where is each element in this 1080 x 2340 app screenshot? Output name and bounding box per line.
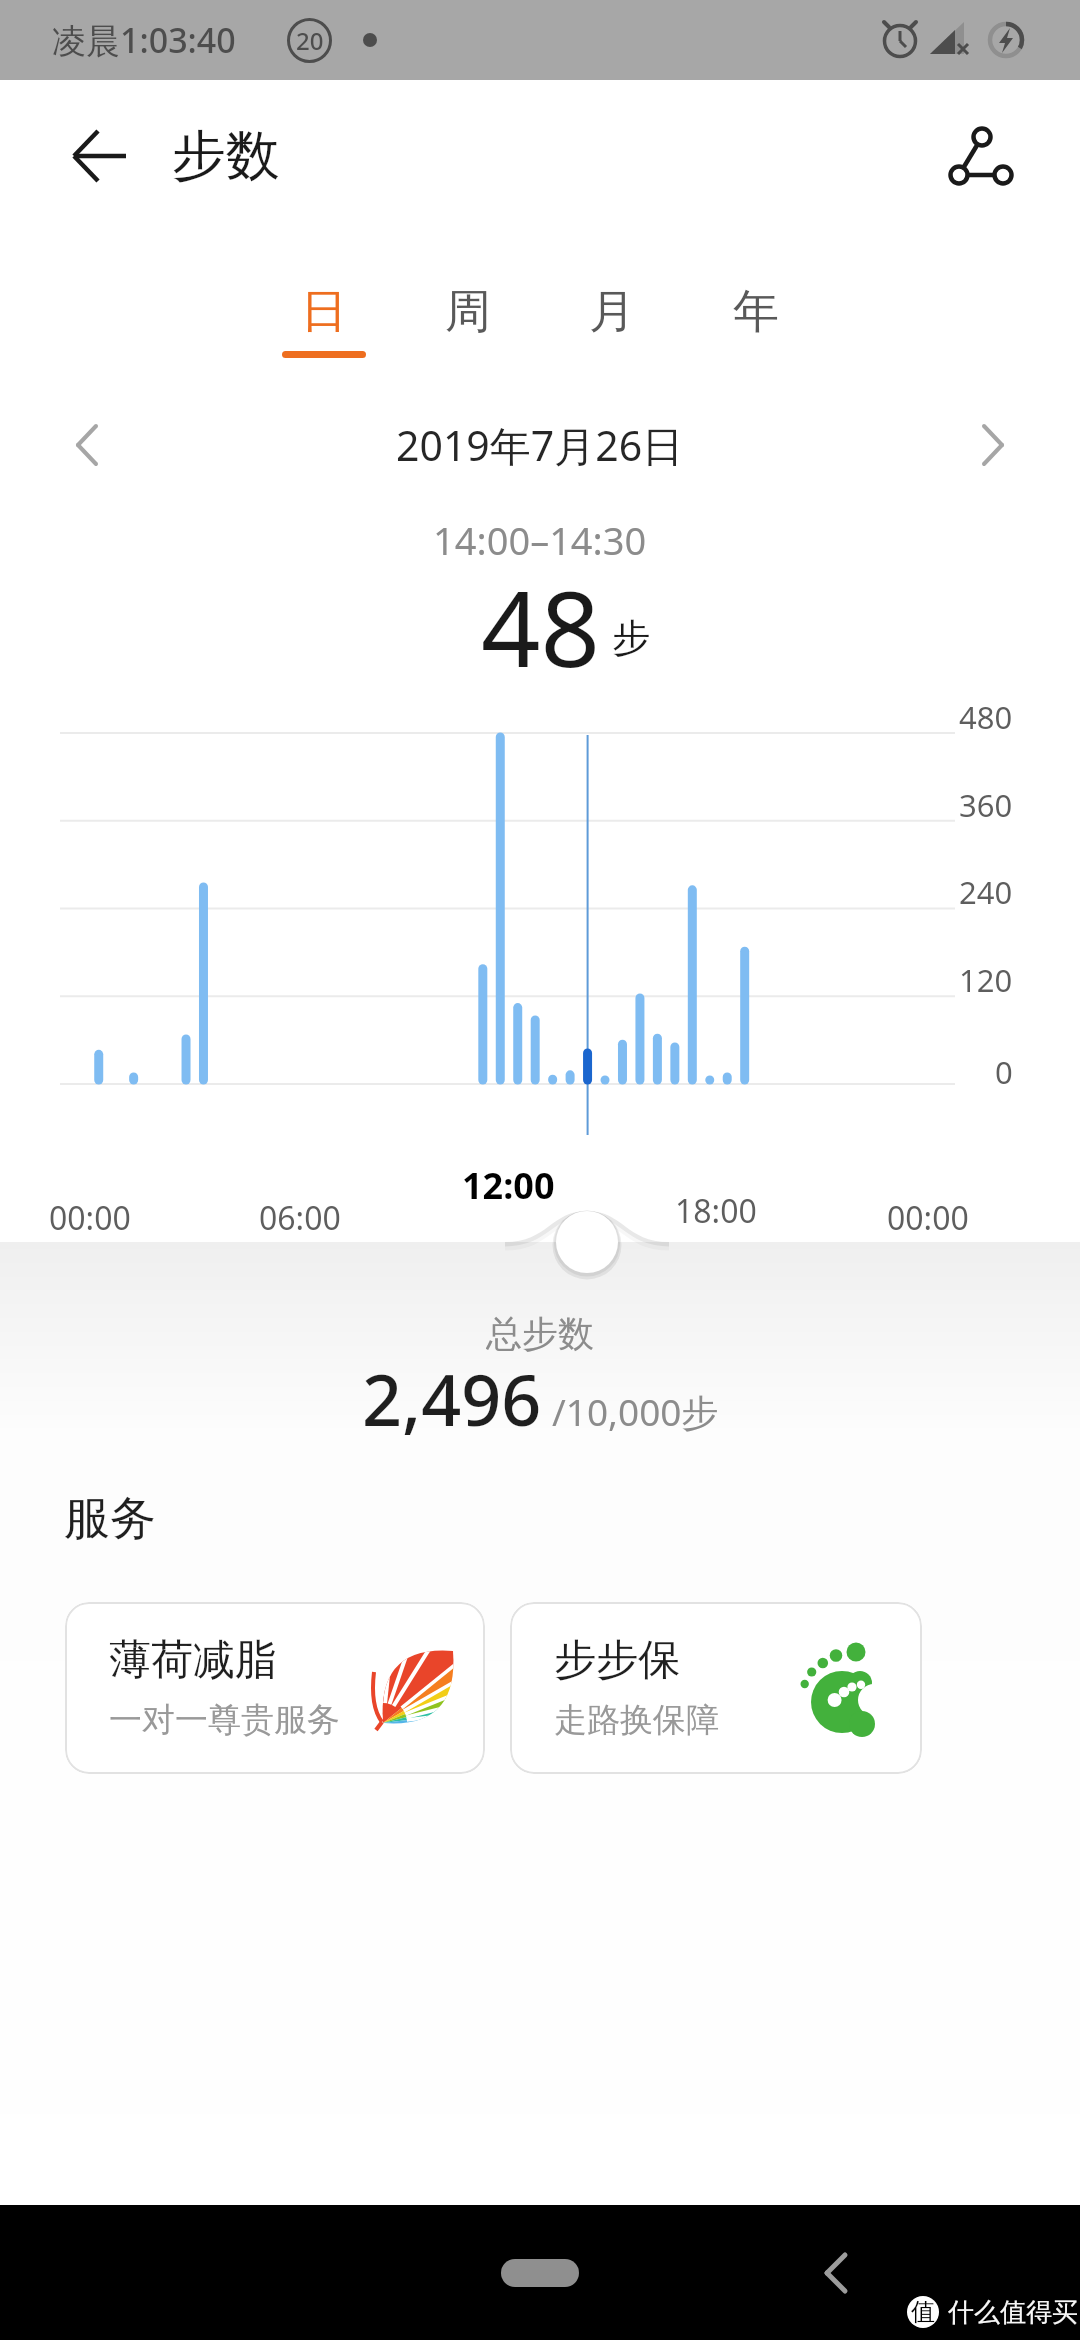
staticText: 年 [733, 283, 779, 341]
staticText: 14:00–14:30 [433, 514, 647, 560]
button[interactable]: 薄荷减脂 [65, 1602, 485, 1774]
staticText: /10,000步 [552, 1386, 719, 1437]
staticText: 2,496 [362, 1351, 542, 1446]
staticText: 步 [612, 614, 650, 662]
staticText: 什么值得买 [948, 2296, 1078, 2328]
staticText: 值 [911, 2297, 935, 2327]
staticText: 2019年7月26日 [396, 417, 684, 473]
button[interactable]: 步步保 [510, 1602, 922, 1774]
staticText: 480 [959, 696, 1013, 738]
staticText: 月 [589, 283, 635, 341]
staticText: 00:00 [49, 1196, 131, 1240]
staticText: 18:00 [675, 1189, 757, 1233]
staticText: 120 [959, 959, 1013, 1001]
button[interactable] [60, 117, 138, 195]
staticText: 周 [445, 283, 491, 341]
staticText: 48 [481, 556, 600, 694]
button[interactable]: 周 [396, 276, 540, 348]
staticText: 240 [959, 871, 1013, 913]
staticText: 12:00 [462, 1161, 555, 1209]
staticText: 0 [995, 1051, 1013, 1093]
staticText: 总步数 [486, 1311, 594, 1355]
staticText: 凌晨1:03:40 [52, 17, 236, 63]
staticText: 00:00 [887, 1196, 969, 1240]
staticText: 06:00 [259, 1196, 341, 1240]
button[interactable]: 月 [540, 276, 684, 348]
staticText: 薄荷减脂 [109, 1634, 277, 1687]
button[interactable] [935, 110, 1027, 202]
staticText: 日 [301, 283, 347, 341]
button[interactable] [960, 409, 1024, 481]
button[interactable] [56, 409, 120, 481]
button[interactable]: 日 [252, 276, 396, 348]
staticText: 步数 [172, 122, 280, 190]
staticText: 20 [296, 24, 324, 57]
button[interactable]: 年 [684, 276, 828, 348]
staticText: 360 [959, 784, 1013, 826]
button[interactable] [805, 2245, 865, 2301]
staticText: 一对一尊贵服务 [109, 1699, 340, 1741]
staticText: 步步保 [554, 1634, 680, 1687]
button[interactable] [501, 2259, 579, 2287]
staticText: 服务 [64, 1490, 156, 1544]
staticText: 走路换保障 [554, 1699, 719, 1741]
